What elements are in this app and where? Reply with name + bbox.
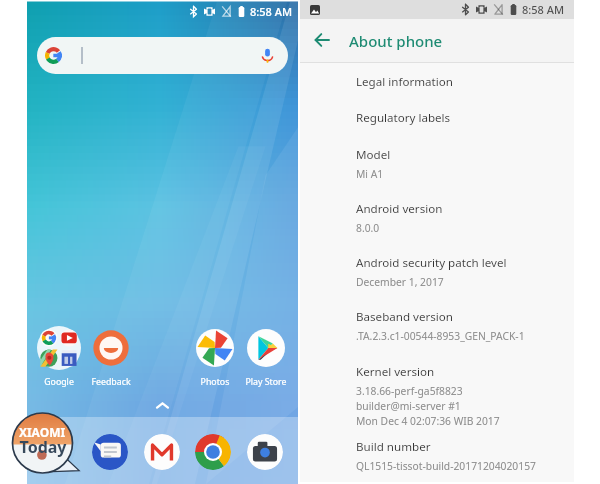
staticText: Feedback: [85, 376, 137, 388]
button[interactable]: Chrome: [195, 434, 231, 470]
staticText: About phone: [349, 31, 443, 51]
staticText: 8:58 AM: [522, 2, 565, 17]
staticText: 3.18.66-perf-ga5f8823: [356, 384, 463, 398]
button[interactable]: Feedback: [85, 326, 137, 388]
button[interactable]: Build number: [356, 439, 566, 473]
button[interactable]: Android security patch level: [356, 255, 566, 289]
staticText: Google: [33, 376, 85, 388]
button[interactable]: Google: [33, 326, 85, 388]
button[interactable]: Google search: [37, 37, 288, 74]
button[interactable]: Photos: [189, 326, 241, 388]
staticText: 8:58 AM: [250, 4, 293, 19]
button[interactable]: Gmail: [144, 434, 180, 470]
button[interactable]: Legal information: [356, 74, 566, 90]
button[interactable]: Camera: [247, 434, 283, 470]
staticText: QL1515-tissot-build-20171204020157: [356, 459, 536, 473]
staticText: .TA.2.3.c1-00544-8953_GEN_PACK-1: [356, 329, 525, 343]
button[interactable]: Baseband version: [356, 309, 566, 343]
staticText: Mon Dec 4 02:07:36 WIB 2017: [356, 414, 500, 428]
staticText: 8.0.0: [356, 221, 380, 235]
staticText: Regulatory labels: [356, 110, 451, 126]
button[interactable]: Model: [356, 147, 566, 181]
staticText: Kernel version: [356, 364, 435, 380]
button[interactable]: Android version: [356, 201, 566, 235]
staticText: Baseband version: [356, 309, 454, 325]
button[interactable]: Kernel version: [356, 364, 566, 428]
staticText: XIAOMI: [16, 424, 68, 440]
staticText: builder@mi-server #1: [356, 399, 461, 413]
staticText: December 1, 2017: [356, 275, 444, 289]
button[interactable]: Back: [310, 28, 334, 52]
staticText: Photos: [189, 376, 241, 388]
staticText: Mi A1: [356, 167, 384, 181]
staticText: Model: [356, 147, 391, 163]
staticText: Today: [16, 436, 70, 458]
staticText: Android security patch level: [356, 255, 507, 271]
staticText: Android version: [356, 201, 443, 217]
staticText: Legal information: [356, 74, 453, 90]
button[interactable]: Regulatory labels: [356, 110, 566, 126]
staticText: Build number: [356, 439, 431, 455]
button[interactable]: Play Store: [240, 326, 292, 388]
staticText: Play Store: [240, 376, 292, 388]
button[interactable]: Messages: [92, 434, 128, 470]
